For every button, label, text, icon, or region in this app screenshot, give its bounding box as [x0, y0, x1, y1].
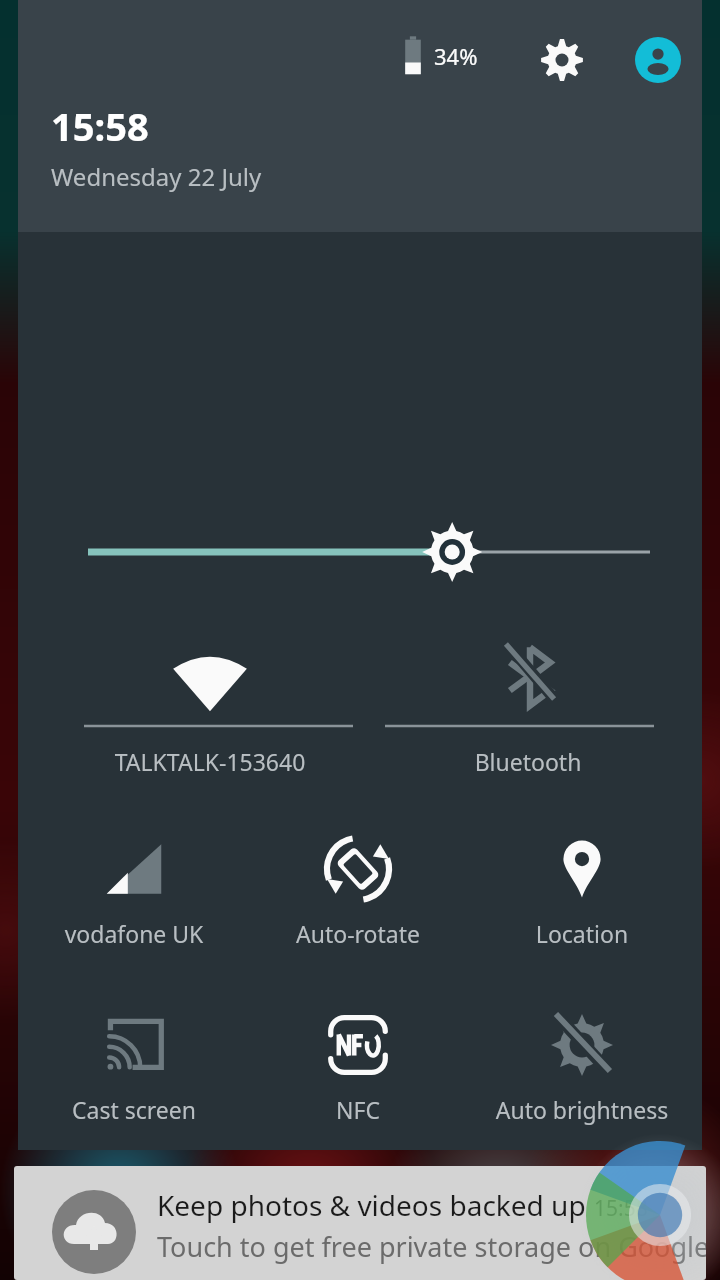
- button[interactable]: User: [626, 28, 690, 92]
- staticText: Wednesday 22 July: [51, 160, 262, 193]
- button[interactable]: TALKTALK-153640: [66, 636, 354, 786]
- button[interactable]: vodafone UK: [26, 832, 242, 968]
- staticText: TALKTALK-153640: [66, 746, 354, 777]
- button[interactable]: Cast screen: [26, 1008, 242, 1144]
- staticText: Touch to get free private storage on Goo…: [157, 1228, 706, 1265]
- button[interactable]: Auto-rotate: [250, 832, 466, 968]
- staticText: vodafone UK: [26, 918, 242, 949]
- staticText: Location: [474, 918, 690, 949]
- staticText: Auto brightness: [474, 1094, 690, 1125]
- staticText: 15:58: [594, 1194, 648, 1223]
- button[interactable]: Brightness: [18, 512, 702, 596]
- button[interactable]: Settings: [530, 28, 594, 92]
- staticText: Auto-rotate: [250, 918, 466, 949]
- button[interactable]: Auto brightness: [474, 1008, 690, 1144]
- staticText: Bluetooth: [384, 746, 672, 777]
- button[interactable]: Keep photos & videos backed up: [14, 1166, 706, 1280]
- staticText: Keep photos & videos backed up: [157, 1186, 586, 1224]
- staticText: NFC: [250, 1094, 466, 1125]
- button[interactable]: Location: [474, 832, 690, 968]
- button[interactable]: Bluetooth: [384, 636, 672, 786]
- staticText: Cast screen: [26, 1094, 242, 1125]
- staticText: 15:58: [51, 100, 149, 152]
- button[interactable]: Flashlight: [250, 1184, 466, 1280]
- button[interactable]: NFC: [250, 1008, 466, 1144]
- staticText: 34%: [434, 41, 478, 71]
